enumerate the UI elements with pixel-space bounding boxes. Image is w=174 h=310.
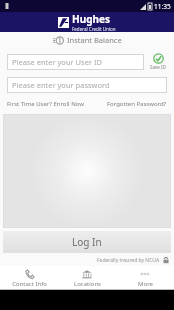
staticText: Save ID (150, 64, 166, 70)
staticText: Instant Balance (67, 35, 122, 45)
button[interactable]: Locations (58, 266, 116, 290)
button[interactable]: Log In (3, 231, 171, 253)
staticText: Log In (72, 235, 102, 249)
button[interactable]: First Time User? Enroll Now (7, 100, 84, 108)
button[interactable]: More (116, 266, 174, 290)
staticText: Locations (74, 280, 101, 288)
button[interactable]: Instant Balance (0, 32, 174, 48)
button[interactable]: Save ID (149, 52, 167, 71)
staticText: Please enter your User ID (12, 57, 102, 67)
button[interactable]: Contact Info (0, 266, 58, 290)
button[interactable]: Please enter your User ID (7, 54, 144, 70)
staticText: Federally insured by NCUA (97, 257, 160, 264)
staticText: Please enter your password (12, 80, 110, 90)
button[interactable]: Please enter your password (7, 77, 167, 93)
staticText: 11:35 (154, 2, 171, 11)
staticText: Federal Credit Union (72, 26, 116, 32)
staticText: Hughes (72, 12, 110, 26)
button[interactable]: Forgotten Password? (107, 100, 167, 108)
staticText: Contact Info (12, 280, 47, 288)
staticText: More (138, 280, 153, 288)
